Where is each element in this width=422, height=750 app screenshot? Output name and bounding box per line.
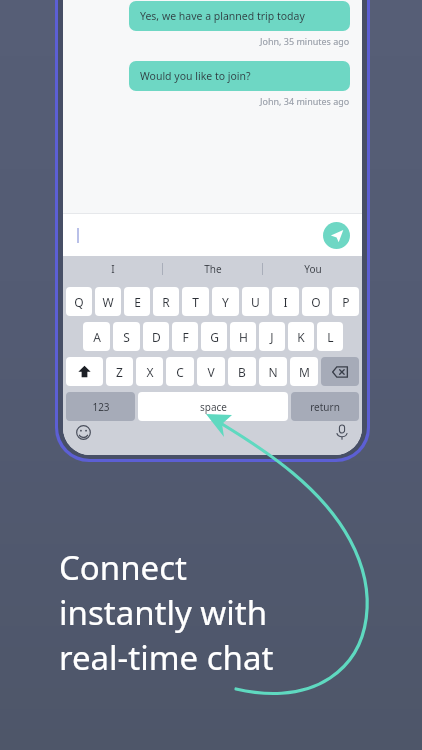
button[interactable]: U (242, 287, 269, 316)
button[interactable]: Voice input (330, 420, 354, 444)
staticText: O (311, 294, 321, 310)
staticText: Q (74, 294, 84, 310)
button[interactable]: N (259, 357, 287, 386)
staticText: G (210, 329, 219, 345)
button[interactable]: F (172, 322, 198, 351)
staticText: John, 35 minutes ago (260, 35, 350, 47)
staticText: instantly with (59, 590, 268, 635)
button[interactable]: P (332, 287, 359, 316)
button[interactable]: T (182, 287, 209, 316)
staticText: A (93, 329, 101, 345)
button[interactable]: J (259, 322, 285, 351)
staticText: 123 (92, 400, 110, 414)
button[interactable]: K (288, 322, 314, 351)
button[interactable]: Shift (66, 357, 103, 386)
button[interactable]: Would you like to join? (129, 61, 350, 91)
button[interactable]: R (153, 287, 179, 316)
staticText: John, 34 minutes ago (260, 95, 350, 107)
staticText: X (146, 364, 154, 380)
staticText: I (283, 294, 288, 310)
staticText: P (342, 294, 350, 310)
staticText: You (304, 262, 322, 276)
button[interactable]: A (83, 322, 110, 351)
button[interactable]: V (197, 357, 225, 386)
button[interactable]: You (263, 256, 362, 282)
button[interactable]: The (163, 256, 262, 282)
button[interactable]: M (290, 357, 318, 386)
staticText: Yes, we have a planned trip today (140, 9, 305, 23)
staticText: J (270, 329, 274, 345)
button[interactable]: G (201, 322, 227, 351)
staticText: E (134, 294, 141, 310)
button[interactable]: Q (66, 287, 92, 316)
staticText: V (207, 364, 215, 380)
staticText: space (200, 400, 227, 414)
staticText: return (310, 400, 340, 414)
button[interactable]: 123 (66, 392, 135, 421)
staticText: K (297, 329, 305, 345)
button[interactable]: D (143, 322, 169, 351)
staticText: real-time chat (59, 635, 274, 680)
button[interactable]: L (317, 322, 343, 351)
button[interactable]: Z (106, 357, 133, 386)
button[interactable]: Emoji (71, 420, 95, 444)
staticText: M (299, 364, 310, 380)
button[interactable]: space (138, 392, 288, 421)
button[interactable]: Send (63, 214, 362, 256)
staticText: Y (222, 294, 229, 310)
button[interactable]: return (291, 392, 359, 421)
button[interactable]: I (63, 256, 162, 282)
staticText: T (192, 294, 199, 310)
staticText: I (111, 262, 115, 276)
button[interactable]: C (166, 357, 194, 386)
button[interactable]: O (302, 287, 329, 316)
staticText: L (327, 329, 334, 345)
button[interactable]: S (113, 322, 140, 351)
button[interactable]: H (230, 322, 256, 351)
staticText: H (239, 329, 248, 345)
staticText: The (204, 262, 222, 276)
button[interactable]: X (136, 357, 163, 386)
staticText: S (123, 329, 130, 345)
button[interactable]: Backspace (321, 357, 359, 386)
button[interactable]: Yes, we have a planned trip today (129, 1, 350, 31)
staticText: B (238, 364, 246, 380)
staticText: F (182, 329, 189, 345)
staticText: U (251, 294, 260, 310)
button[interactable]: B (228, 357, 256, 386)
button[interactable]: Y (212, 287, 239, 316)
staticText: W (102, 294, 114, 310)
staticText: Z (116, 364, 123, 380)
staticText: Connect (59, 545, 187, 590)
button[interactable]: Send (323, 222, 350, 249)
staticText: N (268, 364, 278, 380)
button[interactable]: E (124, 287, 150, 316)
button[interactable]: W (95, 287, 121, 316)
staticText: R (162, 294, 170, 310)
staticText: C (176, 364, 184, 380)
staticText: Would you like to join? (140, 69, 251, 83)
staticText: D (152, 329, 161, 345)
button[interactable]: I (272, 287, 299, 316)
